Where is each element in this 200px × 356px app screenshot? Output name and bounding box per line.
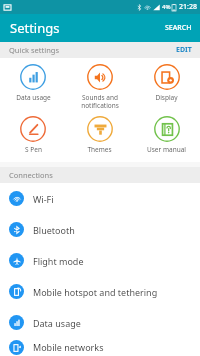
- button[interactable]: Display: [133, 61, 200, 105]
- staticText: User manual: [147, 145, 186, 154]
- button[interactable]: Mobile networks: [0, 338, 200, 356]
- button[interactable]: EDIT: [168, 42, 200, 58]
- button[interactable]: Flight mode: [0, 245, 200, 276]
- staticText: Data usage: [16, 93, 51, 102]
- button[interactable]: User manual: [133, 113, 200, 157]
- staticText: Mobile hotspot and tethering: [33, 286, 158, 298]
- button[interactable]: SEARCH: [157, 16, 200, 40]
- button[interactable]: Wi-Fi: [0, 183, 200, 214]
- staticText: 21:28: [179, 2, 197, 12]
- staticText: 4%: [162, 3, 171, 11]
- staticText: Flight mode: [33, 255, 84, 267]
- button[interactable]: Data usage: [0, 307, 200, 338]
- button[interactable]: S Pen: [0, 113, 66, 157]
- staticText: Wi-Fi: [33, 193, 54, 205]
- staticText: Mobile networks: [33, 341, 104, 353]
- button[interactable]: Data usage: [0, 61, 66, 105]
- staticText: Display: [155, 93, 178, 102]
- button[interactable]: Bluetooth: [0, 214, 200, 245]
- button[interactable]: Sounds and notifications: [66, 61, 133, 113]
- staticText: S Pen: [25, 145, 42, 154]
- staticText: Settings: [10, 19, 60, 37]
- button[interactable]: Mobile hotspot and tethering: [0, 276, 200, 307]
- button[interactable]: Themes: [66, 113, 133, 157]
- staticText: Data usage: [33, 317, 81, 329]
- staticText: EDIT: [176, 45, 192, 55]
- staticText: Sounds and notifications: [81, 93, 119, 110]
- staticText: SEARCH: [165, 23, 192, 33]
- staticText: Connections: [9, 170, 53, 180]
- staticText: Bluetooth: [33, 224, 75, 236]
- staticText: Themes: [87, 145, 112, 154]
- staticText: Quick settings: [9, 45, 59, 55]
